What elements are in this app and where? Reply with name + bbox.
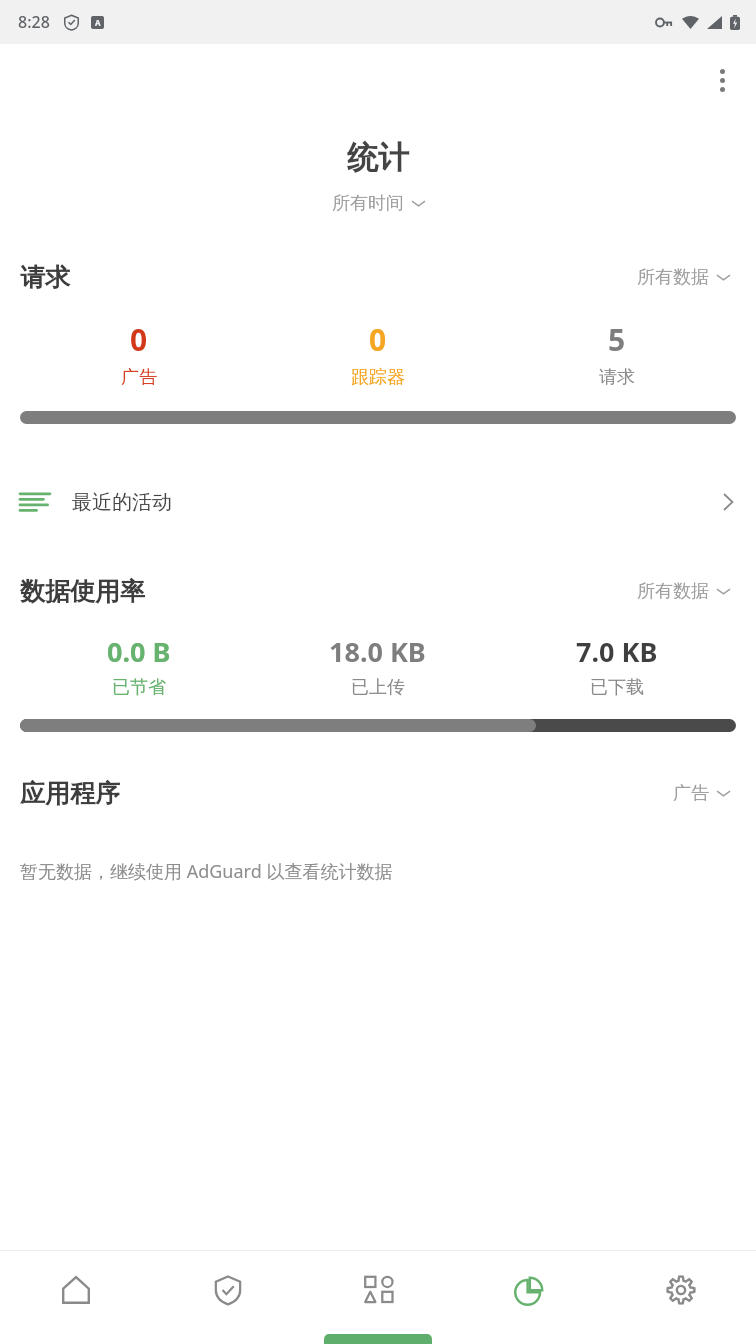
staticText: 请求 (599, 366, 635, 389)
staticText: 广告 (673, 782, 709, 805)
staticText: 5 (608, 319, 626, 360)
staticText: 暂无数据，继续使用 AdGuard 以查看统计数据 (20, 859, 393, 884)
staticText: 所有数据 (637, 266, 709, 289)
button[interactable]: 所有数据 (631, 262, 736, 293)
button[interactable]: 0 (20, 319, 258, 389)
button[interactable]: More options (698, 56, 746, 104)
staticText: 8:28 (18, 11, 50, 33)
button[interactable]: Settings (605, 1251, 756, 1329)
staticText: 已上传 (351, 676, 405, 699)
staticText: 0.0 B (107, 633, 171, 670)
staticText: 应用程序 (20, 778, 120, 809)
button[interactable]: 广告 (667, 778, 736, 809)
button[interactable]: Statistics (454, 1251, 605, 1329)
button[interactable]: Home (0, 1251, 152, 1329)
staticText: 所有时间 (332, 192, 404, 215)
button[interactable]: 5 (497, 319, 736, 389)
staticText: 统计 (0, 138, 756, 177)
button[interactable]: 0.0 B (20, 633, 258, 699)
staticText: 数据使用率 (20, 576, 145, 607)
staticText: 最近的活动 (72, 490, 172, 515)
staticText: 0 (369, 319, 387, 360)
staticText: 请求 (20, 262, 70, 293)
staticText: 已下载 (590, 676, 644, 699)
button[interactable]: 所有数据 (631, 576, 736, 607)
button[interactable]: 所有时间 (326, 189, 431, 218)
staticText: 跟踪器 (351, 366, 405, 389)
staticText: 广告 (121, 366, 157, 389)
button[interactable]: 最近的活动 (0, 474, 756, 530)
staticText: 所有数据 (637, 580, 709, 603)
staticText: 7.0 KB (576, 633, 658, 670)
staticText: A (95, 17, 101, 28)
button[interactable]: 7.0 KB (497, 633, 736, 699)
staticText: 18.0 KB (329, 633, 426, 670)
button[interactable]: 18.0 KB (258, 633, 497, 699)
staticText: 已节省 (112, 676, 166, 699)
staticText: 0 (130, 319, 148, 360)
button[interactable]: 0 (258, 319, 497, 389)
button[interactable]: Apps (303, 1251, 454, 1329)
button[interactable]: Protection (152, 1251, 303, 1329)
